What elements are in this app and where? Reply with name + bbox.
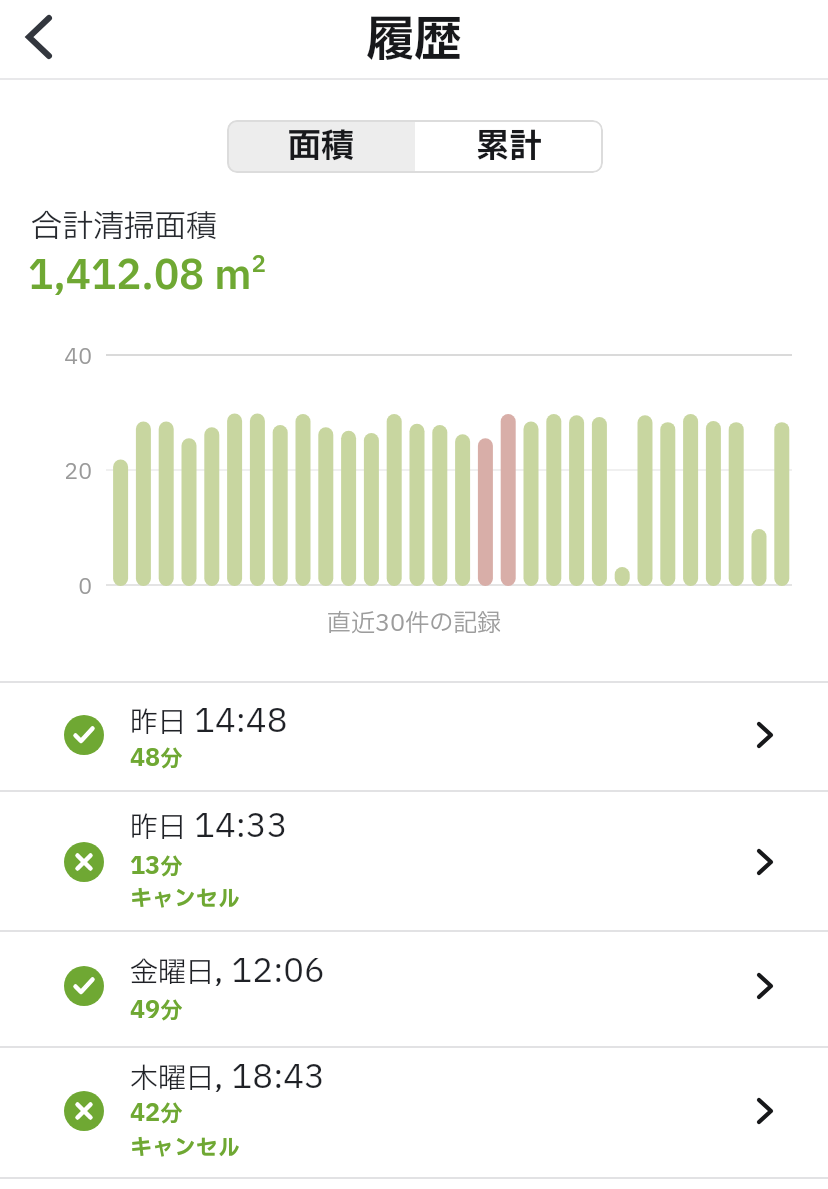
staticText: 合計清掃面積 xyxy=(31,204,217,250)
staticText: 40 xyxy=(30,341,92,374)
staticText: 1,412.08 m2 xyxy=(28,247,266,307)
staticText: 42分 xyxy=(130,1096,183,1132)
staticText: 木曜日, 18:43 xyxy=(130,1053,325,1102)
button[interactable]: 昨日 14:48 xyxy=(0,682,828,790)
button[interactable]: 金曜日, 12:06 xyxy=(0,931,828,1046)
button[interactable]: 累計 xyxy=(415,120,603,173)
staticText: 13分 xyxy=(130,849,183,885)
staticText: 昨日 14:33 xyxy=(130,802,288,851)
staticText: 49分 xyxy=(130,993,183,1029)
staticText: キャンセル xyxy=(130,1132,240,1165)
staticText: 48分 xyxy=(130,741,183,777)
staticText: 20 xyxy=(30,456,92,489)
staticText: 0 xyxy=(30,571,92,604)
button[interactable] xyxy=(18,8,66,68)
staticText: 昨日 14:48 xyxy=(130,697,288,746)
staticText: 面積 xyxy=(288,122,354,171)
staticText: 累計 xyxy=(476,122,542,171)
staticText: 金曜日, 12:06 xyxy=(130,947,325,996)
button[interactable]: 昨日 14:33 xyxy=(0,791,828,930)
staticText: 履歴 xyxy=(366,5,463,77)
staticText: キャンセル xyxy=(130,883,240,916)
staticText: 直近30件の記録 xyxy=(327,606,502,642)
button[interactable]: 木曜日, 18:43 xyxy=(0,1047,828,1177)
button[interactable]: 面積 xyxy=(227,120,415,173)
